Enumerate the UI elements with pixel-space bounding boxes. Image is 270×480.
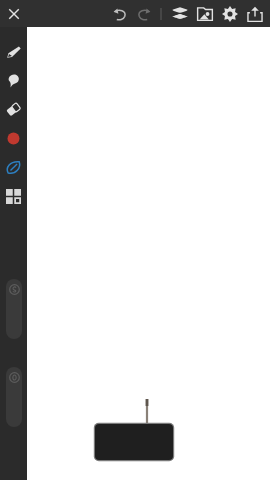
button[interactable]: Pen tool <box>0 37 27 66</box>
button[interactable]: Size slider <box>6 279 22 339</box>
button[interactable]: Gallery <box>192 0 217 27</box>
button[interactable]: Opacity slider <box>6 367 22 427</box>
button[interactable]: Color <box>0 124 27 153</box>
button[interactable]: Settings <box>217 0 242 27</box>
button[interactable]: Layers grid <box>0 182 27 211</box>
button[interactable]: Eraser tool <box>0 95 27 124</box>
button[interactable]: Share <box>242 0 267 27</box>
button[interactable]: Shape tool <box>0 153 27 182</box>
button[interactable]: Layers <box>167 0 192 27</box>
button[interactable]: Close <box>0 0 27 27</box>
button[interactable]: Undo <box>108 0 132 27</box>
button[interactable]: Redo <box>132 0 156 27</box>
button[interactable]: Smudge tool <box>0 66 27 95</box>
